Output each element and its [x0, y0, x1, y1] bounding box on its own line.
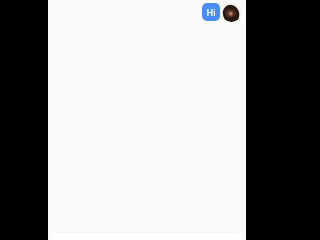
staticText: Hi: [206, 6, 216, 18]
button[interactable]: Hi: [202, 3, 220, 21]
button[interactable]: Profile photo: [222, 3, 241, 22]
button[interactable]: Message input: [52, 232, 242, 240]
